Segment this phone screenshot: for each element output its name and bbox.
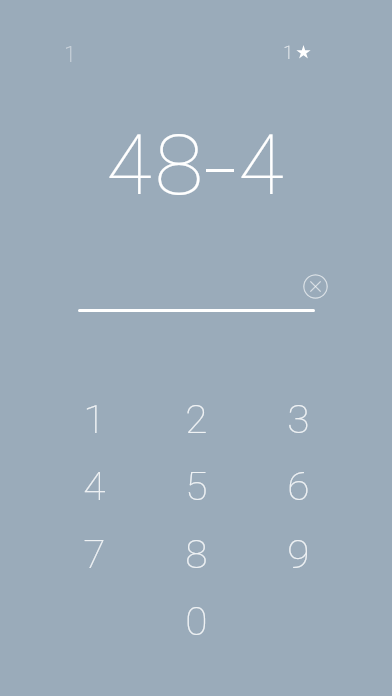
staticText: 4 (238, 117, 284, 214)
button[interactable]: 2 (162, 390, 230, 450)
staticText: 6 (287, 465, 310, 510)
button[interactable]: 1 (60, 390, 128, 450)
button[interactable]: 3 (264, 390, 332, 450)
staticText: 5 (185, 465, 208, 510)
staticText: 2 (185, 398, 208, 443)
staticText: 0 (185, 600, 208, 645)
button[interactable]: Clear (303, 274, 328, 299)
button[interactable]: 9 (264, 525, 332, 585)
button[interactable]: 4 (60, 457, 128, 517)
button[interactable]: 7 (60, 525, 128, 585)
button[interactable]: 8 (162, 525, 230, 585)
staticText: 8 (154, 117, 204, 214)
button[interactable]: 1 (276, 36, 318, 70)
staticText: 8 (185, 533, 208, 578)
button[interactable]: 0 (162, 592, 230, 652)
staticText: 7 (83, 533, 106, 578)
button[interactable]: 1 (50, 36, 90, 74)
button[interactable]: 6 (264, 457, 332, 517)
staticText: 9 (287, 533, 310, 578)
staticText: 4 (106, 117, 152, 214)
staticText: 1 (283, 41, 294, 63)
staticText: 1 (83, 398, 106, 443)
staticText: 3 (287, 398, 310, 443)
staticText: 1 (64, 42, 77, 68)
staticText: 4 (83, 465, 106, 510)
button[interactable]: 5 (162, 457, 230, 517)
